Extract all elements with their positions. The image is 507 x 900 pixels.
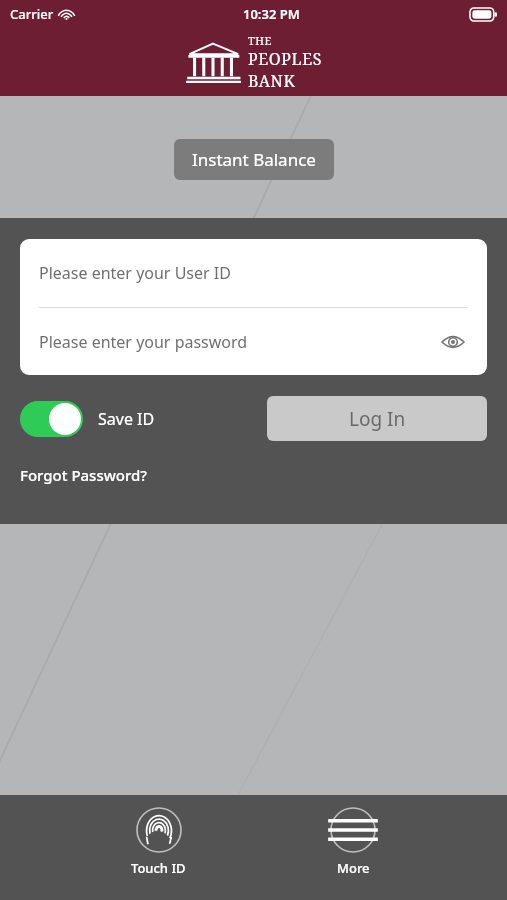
staticText: Save ID (98, 408, 155, 430)
staticText: 10:32 PM (243, 5, 300, 23)
staticText: Log In (349, 406, 406, 432)
button[interactable]: Please enter your password (20, 308, 487, 375)
staticText: THE (248, 33, 272, 48)
button[interactable]: Save ID toggle (20, 401, 83, 437)
button[interactable]: Touch ID (119, 805, 198, 879)
button[interactable]: Please enter your User ID (20, 239, 487, 307)
staticText: Please enter your User ID (39, 262, 231, 284)
button[interactable]: Instant Balance (174, 139, 334, 180)
staticText: More (337, 859, 370, 877)
staticText: Forgot Password? (20, 465, 148, 485)
button[interactable]: Forgot Password? (20, 465, 148, 485)
staticText: BANK (248, 70, 296, 92)
staticText: Instant Balance (192, 148, 316, 171)
button[interactable]: Show password (438, 327, 468, 357)
staticText: PEOPLES (248, 48, 323, 70)
staticText: Carrier (10, 5, 54, 23)
staticText: Please enter your password (39, 331, 248, 353)
staticText: Touch ID (131, 859, 186, 877)
button[interactable]: More (318, 805, 388, 879)
button[interactable]: Log In (267, 396, 487, 441)
